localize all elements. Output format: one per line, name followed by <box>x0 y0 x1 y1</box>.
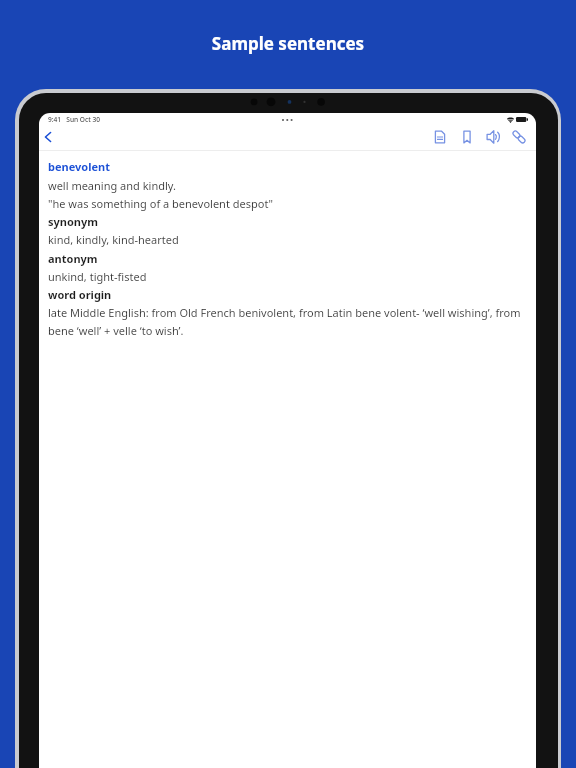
staticText: benevolent <box>48 159 526 174</box>
button[interactable]: Bookmark <box>458 127 476 145</box>
staticText: Sample sentences <box>0 32 576 55</box>
button[interactable]: Pronounce <box>484 127 502 145</box>
button[interactable]: Copy link <box>510 127 528 145</box>
staticText: 9:41 Sun Oct 30 <box>48 115 101 124</box>
staticText: word origin <box>48 287 526 302</box>
staticText: "he was something of a benevolent despot… <box>48 196 526 211</box>
staticText: antonym <box>48 251 526 266</box>
staticText: well meaning and kindly. <box>48 178 526 193</box>
staticText: synonym <box>48 214 526 229</box>
staticText: kind, kindly, kind-hearted <box>48 232 526 247</box>
button[interactable]: Back <box>40 129 56 145</box>
button[interactable] <box>39 153 536 343</box>
staticText: unkind, tight-fisted <box>48 269 526 284</box>
button[interactable]: Definition <box>431 127 449 145</box>
staticText: late Middle English: from Old French ben… <box>48 305 526 339</box>
